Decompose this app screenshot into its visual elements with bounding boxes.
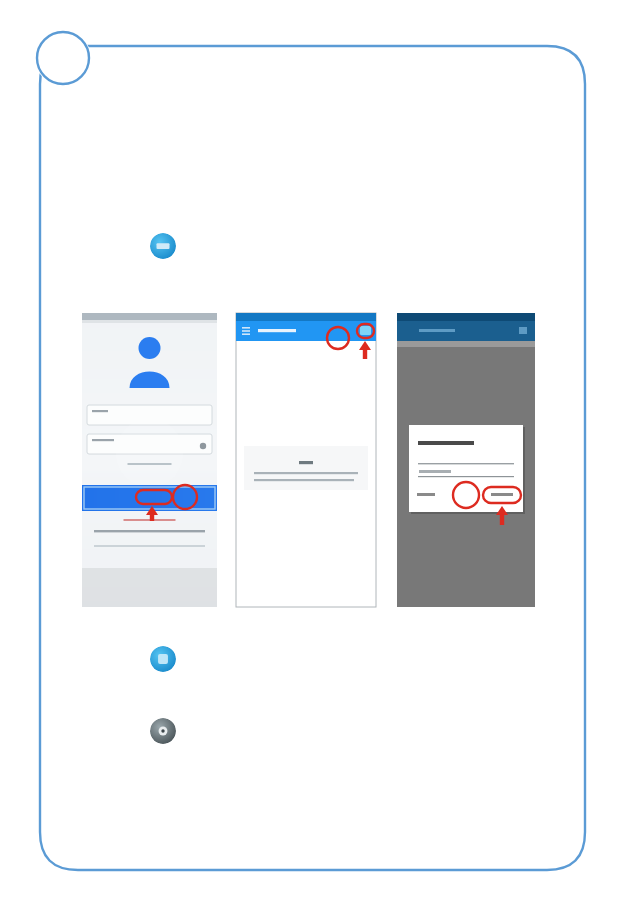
button[interactable]: Settings step: [150, 718, 176, 744]
button[interactable]: Next step: [150, 646, 176, 672]
button[interactable]: Tap the arrow: [150, 233, 176, 259]
